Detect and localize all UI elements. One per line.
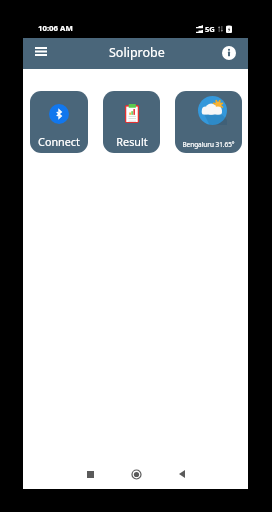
button[interactable]: Result <box>103 91 160 153</box>
staticText: Result <box>116 134 148 149</box>
staticText: 10:06 AM <box>38 23 73 34</box>
staticText: Soliprobe <box>109 44 165 61</box>
button[interactable]: Home <box>126 464 146 484</box>
button[interactable]: Bengaluru 31.65° <box>175 91 242 153</box>
button[interactable]: Back <box>172 464 192 484</box>
button[interactable]: Menu <box>29 40 52 63</box>
staticText: Connect <box>38 134 80 149</box>
button[interactable]: Connect <box>30 91 88 153</box>
staticText: 5G <box>205 24 215 34</box>
staticText: Bengaluru 31.65° <box>182 140 235 149</box>
button[interactable]: Recent apps <box>80 464 100 484</box>
button[interactable]: Info <box>217 41 240 64</box>
